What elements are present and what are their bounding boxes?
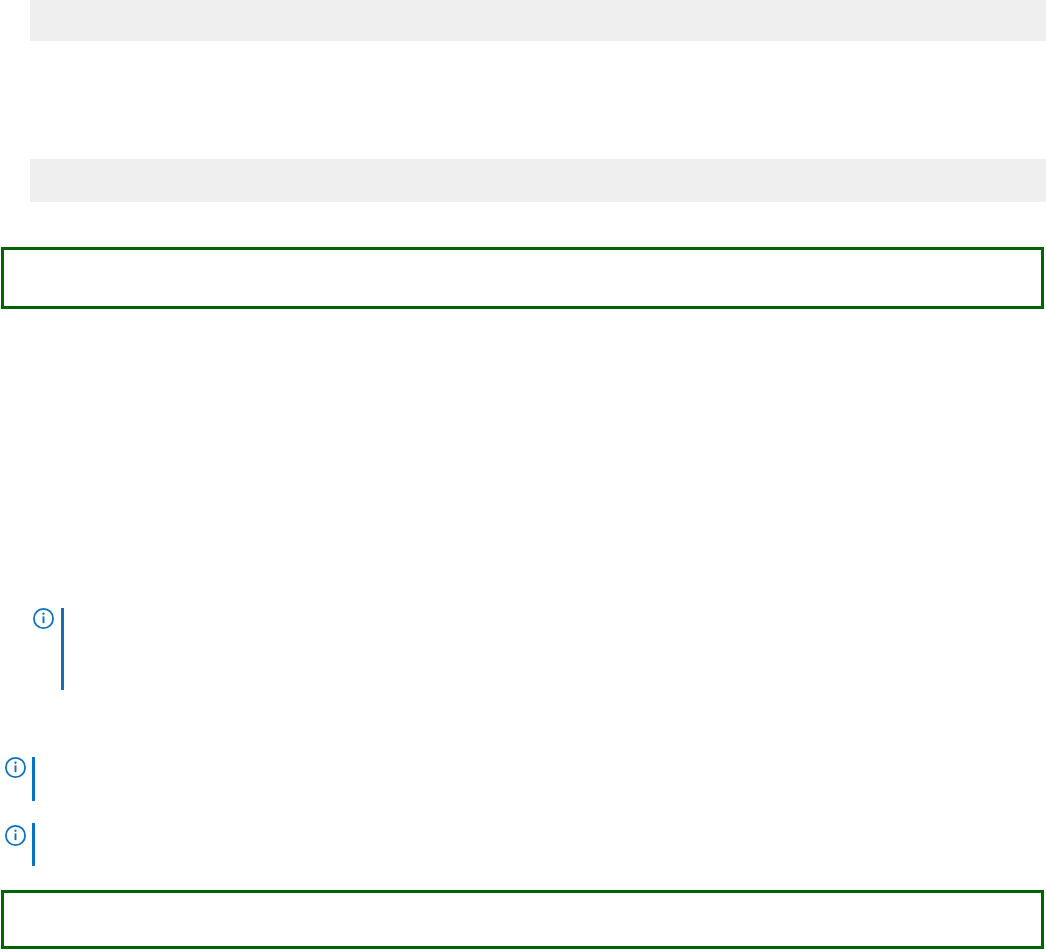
button[interactable]: Information [5,825,26,846]
button[interactable] [1,247,1044,309]
button[interactable] [1,890,1044,949]
button[interactable]: Information [5,757,26,778]
button[interactable]: Information [33,608,54,629]
